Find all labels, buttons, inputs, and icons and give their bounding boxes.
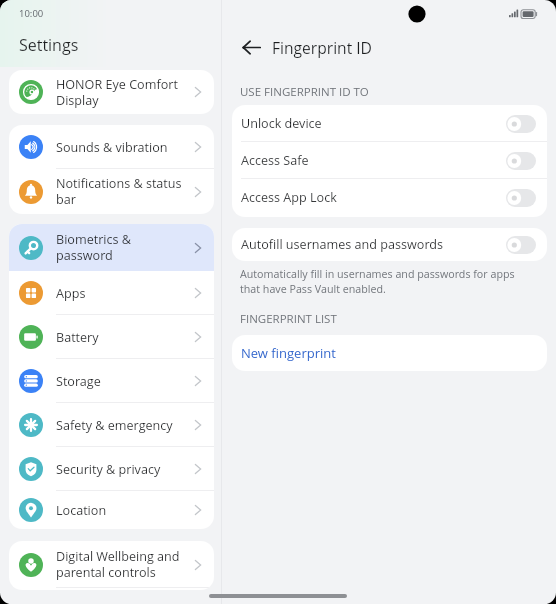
staticText: USE FINGERPRINT ID TO xyxy=(240,84,369,100)
button[interactable]: Biometrics & password xyxy=(9,224,214,271)
button[interactable]: Autofill usernames and passwords xyxy=(232,228,547,261)
staticText: Settings xyxy=(19,34,79,56)
staticText: 10:00 xyxy=(19,7,44,20)
button[interactable]: Back xyxy=(237,33,265,61)
button[interactable]: Toggle xyxy=(506,236,536,254)
staticText: Access App Lock xyxy=(241,189,337,206)
button[interactable]: Apps xyxy=(9,271,214,315)
staticText: FINGERPRINT LIST xyxy=(240,311,337,327)
staticText: New fingerprint xyxy=(241,344,336,362)
button[interactable]: Access App Lock xyxy=(232,179,547,216)
button[interactable]: Unlock device xyxy=(232,105,547,142)
button[interactable]: Toggle xyxy=(506,115,536,133)
staticText: Autofill usernames and passwords xyxy=(241,236,444,253)
staticText: Battery xyxy=(56,329,99,346)
button[interactable]: New fingerprint xyxy=(232,335,547,371)
staticText: Unlock device xyxy=(241,115,322,132)
button[interactable]: Sounds & vibration xyxy=(9,125,214,169)
button[interactable]: Storage xyxy=(9,359,214,403)
button[interactable]: Safety & emergency xyxy=(9,403,214,447)
button[interactable]: Battery xyxy=(9,315,214,359)
staticText: Apps xyxy=(56,285,86,302)
staticText: Location xyxy=(56,502,107,519)
button[interactable]: Access Safe xyxy=(232,142,547,179)
staticText: Access Safe xyxy=(241,152,309,169)
staticText: HONOR Eye Comfort Display xyxy=(56,76,178,109)
staticText: Digital Wellbeing and parental controls xyxy=(56,548,180,581)
button[interactable]: Location xyxy=(9,491,214,529)
button[interactable]: Notifications & status bar xyxy=(9,169,214,214)
button[interactable]: Security & privacy xyxy=(9,447,214,491)
staticText: Notifications & status bar xyxy=(56,175,182,208)
button[interactable]: HONOR Eye Comfort Display xyxy=(9,70,214,114)
staticText: Biometrics & password xyxy=(56,231,131,264)
button[interactable]: Digital Wellbeing and parental controls xyxy=(9,541,214,588)
staticText: Security & privacy xyxy=(56,461,161,478)
staticText: Automatically fill in usernames and pass… xyxy=(240,267,525,297)
staticText: Sounds & vibration xyxy=(56,139,168,156)
staticText: Safety & emergency xyxy=(56,417,173,434)
staticText: Fingerprint ID xyxy=(272,37,372,58)
staticText: Storage xyxy=(56,373,101,390)
button[interactable]: Toggle xyxy=(506,152,536,170)
button[interactable]: Toggle xyxy=(506,189,536,207)
